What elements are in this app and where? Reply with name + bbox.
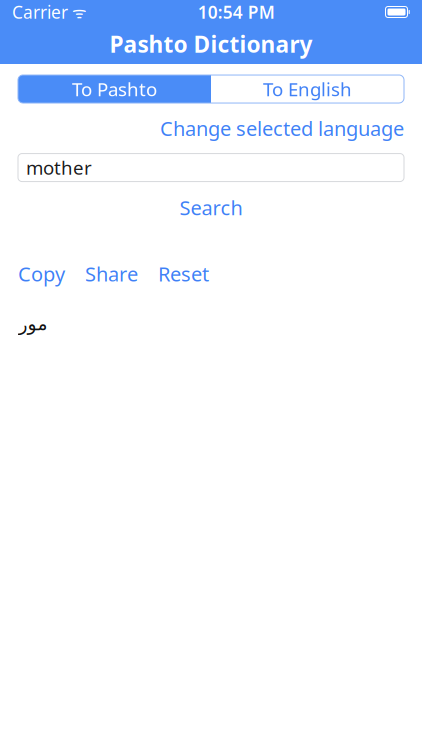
staticText: Share <box>85 261 138 287</box>
staticText: Search <box>179 194 242 221</box>
staticText: Reset <box>158 261 209 287</box>
button[interactable]: Change selected language <box>160 115 404 142</box>
staticText: Change selected language <box>160 115 404 142</box>
button[interactable]: Copy <box>18 261 65 287</box>
staticText: ᯤ <box>68 1 87 23</box>
staticText: To Pashto <box>72 77 157 101</box>
staticText: Copy <box>18 261 65 287</box>
staticText: 10:54 PM <box>198 0 275 23</box>
button[interactable]: Reset <box>158 261 209 287</box>
button[interactable]: Search <box>18 197 404 219</box>
staticText: Carrier <box>12 0 68 23</box>
staticText: مور <box>18 313 47 334</box>
button[interactable]: To Pashto <box>18 75 404 103</box>
staticText: Pashto Dictionary <box>109 29 312 59</box>
staticText: To English <box>263 77 352 101</box>
button[interactable]: Share <box>85 261 138 287</box>
staticText: mother <box>26 155 92 180</box>
